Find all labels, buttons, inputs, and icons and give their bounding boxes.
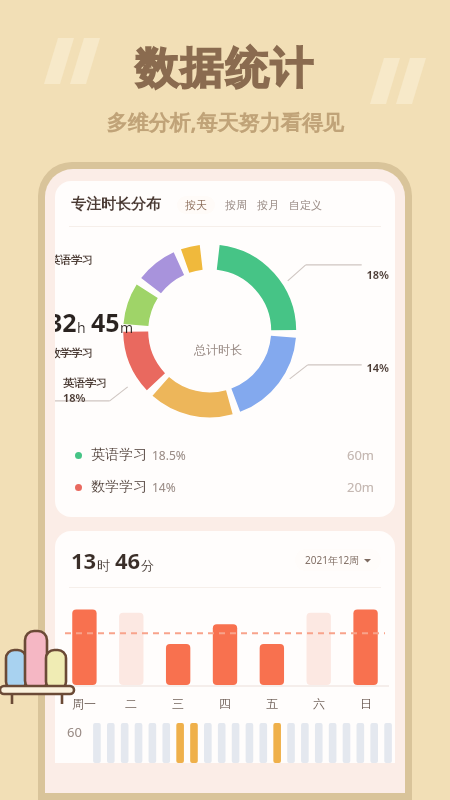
staticText: 14% xyxy=(55,360,389,375)
staticText: m xyxy=(120,318,134,337)
staticText: 时 xyxy=(97,557,110,573)
staticText: 英语学习 xyxy=(55,253,93,267)
staticText: 四 xyxy=(219,696,231,711)
button[interactable]: 按天 xyxy=(177,196,215,214)
staticText: 按天 xyxy=(185,198,207,212)
button[interactable]: 自定义 xyxy=(289,196,322,214)
staticText: 英语学习 xyxy=(91,446,147,464)
staticText: 五 xyxy=(266,696,278,711)
staticText: 总计时长 xyxy=(55,342,388,357)
staticText: 60m xyxy=(347,446,375,464)
staticText: 60 xyxy=(67,723,82,741)
staticText: 按周 xyxy=(225,198,247,212)
button[interactable]: 英语学习 xyxy=(55,439,395,471)
staticText: 自定义 xyxy=(289,198,322,212)
staticText: 45 xyxy=(91,305,120,339)
staticText: 三 xyxy=(172,696,184,711)
staticText: 46 xyxy=(115,545,141,575)
staticText: 18.5% xyxy=(152,447,186,463)
staticText: 20m xyxy=(347,478,375,496)
staticText: 多维分析,每天努力看得见 xyxy=(0,108,450,137)
staticText: 14% xyxy=(152,479,176,495)
staticText: h xyxy=(77,318,86,337)
staticText: 数据统计 xyxy=(0,42,450,96)
staticText: 按月 xyxy=(257,198,279,212)
staticText: 六 xyxy=(313,696,325,711)
staticText: 18% xyxy=(55,267,389,282)
staticText: 2021年12周 xyxy=(305,553,360,567)
staticText: 英语学习 xyxy=(63,376,107,390)
button[interactable]: 2021年12周 xyxy=(295,549,381,571)
staticText: 专注时长分布 xyxy=(71,195,161,214)
staticText: 32 xyxy=(55,305,77,339)
staticText: 周一 xyxy=(72,696,96,711)
staticText: 二 xyxy=(125,696,137,711)
staticText: 13 xyxy=(71,545,97,575)
button[interactable]: 数学学习 xyxy=(55,471,395,503)
staticText: 18% xyxy=(63,390,86,405)
staticText: 分 xyxy=(141,557,154,573)
button[interactable]: 按月 xyxy=(257,196,279,214)
staticText: 数学学习 xyxy=(55,346,93,360)
staticText: 日 xyxy=(360,696,372,711)
button[interactable]: 按周 xyxy=(225,196,247,214)
staticText: 数学学习 xyxy=(91,478,147,496)
